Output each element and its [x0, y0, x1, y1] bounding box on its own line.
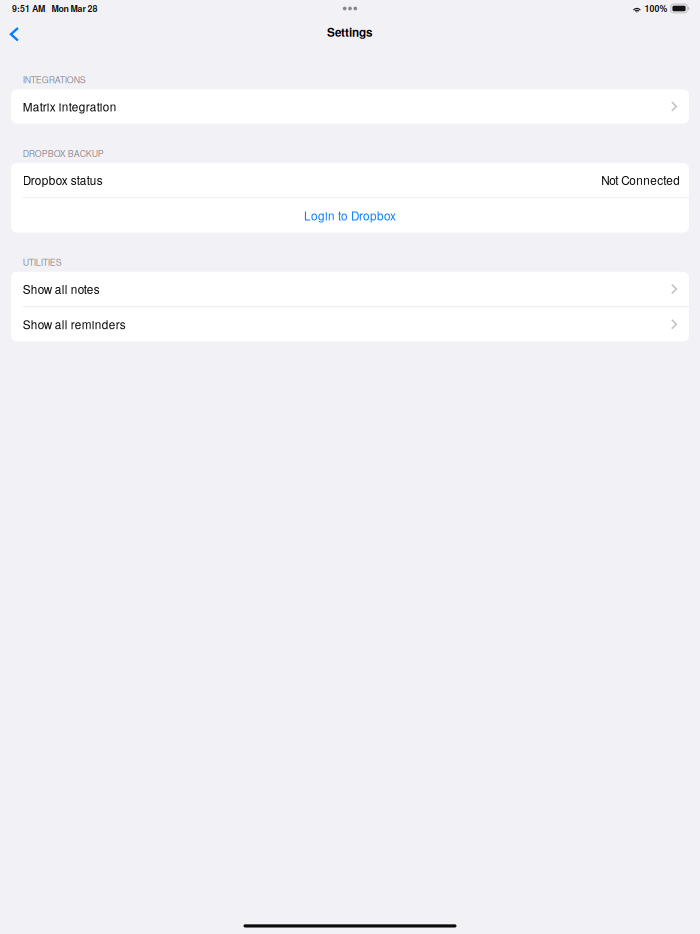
- button[interactable]: Show all notes: [11, 272, 689, 306]
- staticText: INTEGRATIONS: [23, 73, 86, 86]
- staticText: Settings: [327, 24, 373, 40]
- button[interactable]: Back: [0, 18, 29, 46]
- staticText: Show all notes: [23, 281, 100, 297]
- staticText: Mon Mar 28: [51, 2, 97, 15]
- staticText: 100%: [645, 2, 668, 15]
- button[interactable]: Show all reminders: [11, 307, 689, 341]
- staticText: Dropbox status: [23, 172, 103, 188]
- staticText: Show all reminders: [23, 316, 126, 333]
- button[interactable]: Login to Dropbox: [11, 198, 689, 232]
- staticText: UTILITIES: [23, 256, 62, 268]
- staticText: 9:51 AM: [12, 2, 45, 15]
- staticText: Not Connected: [601, 172, 680, 188]
- staticText: Matrix integration: [23, 98, 117, 115]
- staticText: Login to Dropbox: [304, 207, 396, 224]
- button[interactable]: Matrix integration: [11, 89, 689, 124]
- staticText: DROPBOX BACKUP: [23, 147, 104, 159]
